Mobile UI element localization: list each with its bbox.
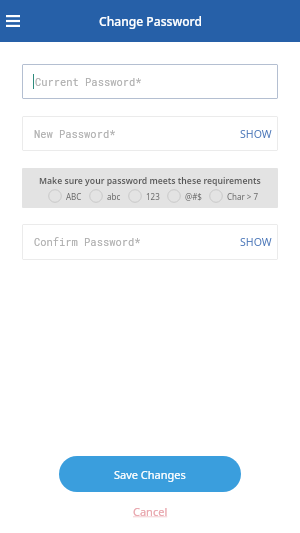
button[interactable]: Current Password* <box>22 64 278 99</box>
staticText: 123 <box>146 191 160 202</box>
staticText: Current Password* <box>35 75 142 89</box>
button[interactable]: SHOW <box>240 235 272 249</box>
button[interactable]: Menu <box>0 8 26 34</box>
button[interactable]: New Password* <box>22 116 278 151</box>
staticText: Make sure your password meets these requ… <box>39 175 261 187</box>
staticText: New Password* <box>34 127 116 141</box>
button[interactable]: Save Changes <box>59 456 241 492</box>
button[interactable]: Cancel <box>133 504 168 519</box>
staticText: Confirm Password* <box>34 235 141 249</box>
staticText: ABC <box>66 191 82 202</box>
staticText: Change Password <box>99 13 202 29</box>
button[interactable]: Confirm Password* <box>22 224 278 260</box>
staticText: abc <box>107 191 121 202</box>
staticText: Char > 7 <box>227 191 259 202</box>
staticText: Save Changes <box>114 467 186 482</box>
button[interactable]: SHOW <box>240 127 272 141</box>
staticText: @#$ <box>185 191 202 202</box>
